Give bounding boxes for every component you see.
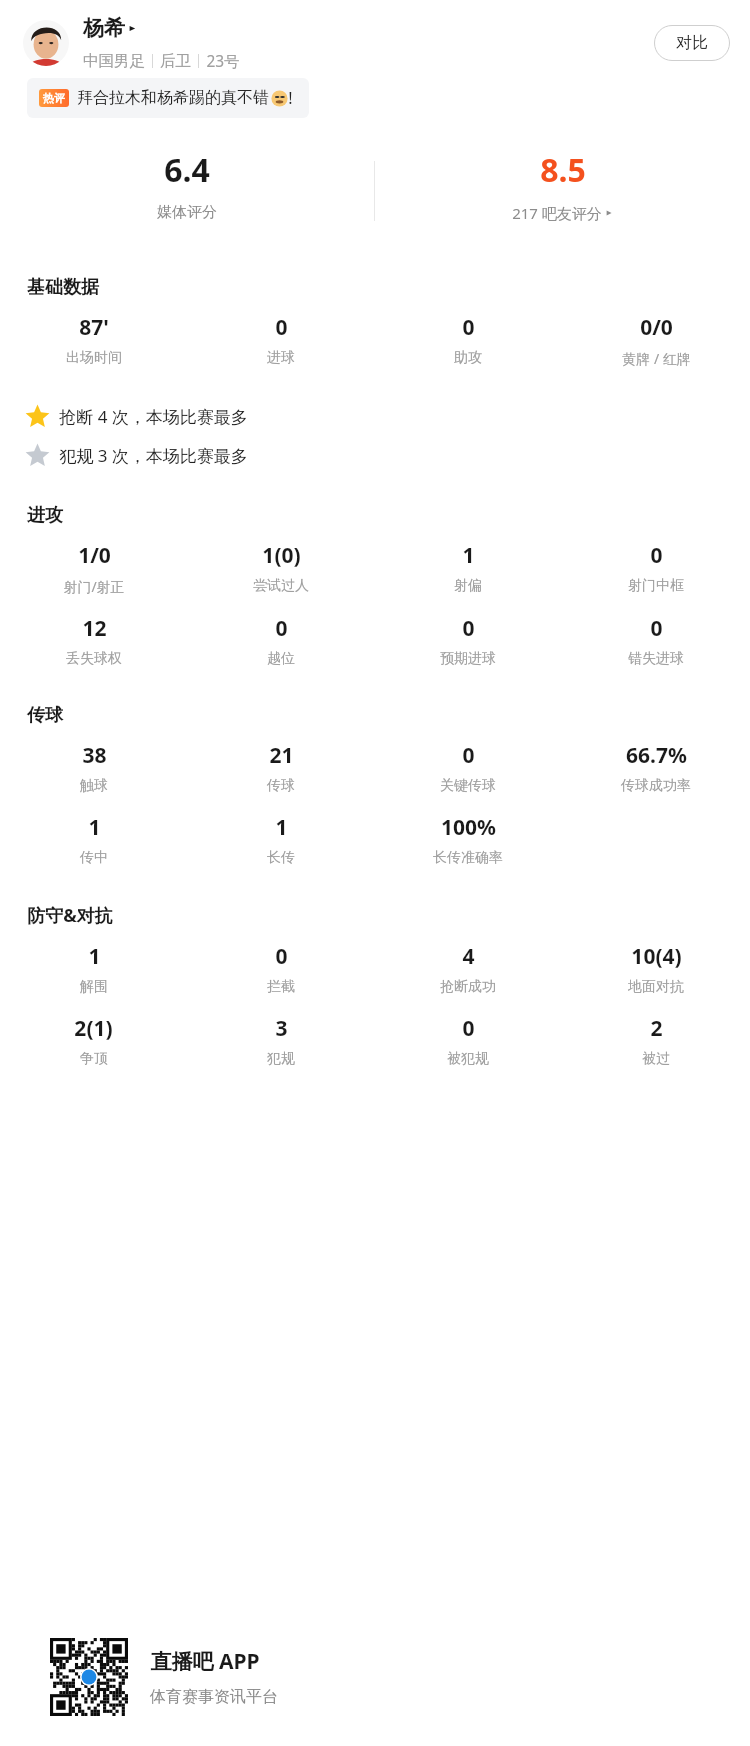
staticText: 助攻 <box>454 349 482 367</box>
staticText: 传球成功率 <box>621 777 691 795</box>
staticText: 射偏 <box>454 577 482 595</box>
button[interactable]: 0 <box>440 741 496 795</box>
staticText: 2 <box>650 1014 663 1043</box>
staticText: 传中 <box>80 849 108 867</box>
button[interactable]: 杨希 <box>83 15 137 41</box>
staticText: 23号 <box>206 50 240 71</box>
staticText: 拦截 <box>267 978 295 996</box>
staticText: 0 <box>275 942 288 971</box>
button[interactable]: 对比 <box>654 25 730 61</box>
button[interactable]: 2(1) <box>74 1014 113 1068</box>
button[interactable]: 0 <box>628 541 684 595</box>
button[interactable]: 38 <box>80 741 108 795</box>
staticText: 1 <box>88 942 101 971</box>
staticText: 38 <box>82 741 107 770</box>
staticText: 预期进球 <box>440 650 496 668</box>
staticText: 0 <box>462 614 475 643</box>
button[interactable]: 0 <box>628 614 684 668</box>
button[interactable]: 1/0 <box>63 541 125 596</box>
staticText: 错失进球 <box>628 650 684 668</box>
staticText: 后卫 <box>160 51 191 71</box>
staticText: 0/0 <box>640 313 673 342</box>
staticText: 长传 <box>267 849 295 867</box>
staticText: 2(1) <box>74 1014 113 1043</box>
button[interactable]: 1(0) <box>253 541 309 595</box>
staticText: 87' <box>79 313 109 342</box>
button[interactable]: 2 <box>642 1014 670 1068</box>
button[interactable]: 0 <box>440 614 496 668</box>
staticText: 媒体评分 <box>157 203 217 222</box>
button[interactable]: 0 <box>267 313 295 367</box>
staticText: 0 <box>462 1014 475 1043</box>
staticText: 100% <box>441 813 496 842</box>
staticText: 防守&对抗 <box>27 903 113 928</box>
staticText: 1 <box>462 541 475 570</box>
staticText: 10(4) <box>631 942 682 971</box>
staticText: 出场时间 <box>66 349 122 367</box>
button[interactable]: 10(4) <box>628 942 684 996</box>
staticText: 拜合拉木和杨希踢的真不错 <box>77 88 269 108</box>
staticText: 杨希 <box>83 15 125 41</box>
staticText: 犯规 <box>267 1050 295 1068</box>
button[interactable]: 1 <box>80 942 108 996</box>
staticText: 8.5 <box>540 148 586 192</box>
staticText: 中国男足 <box>83 51 145 71</box>
staticText: 射门中框 <box>628 577 684 595</box>
staticText: 1(0) <box>262 541 301 570</box>
staticText: 犯规 3 次，本场比赛最多 <box>59 444 248 467</box>
button[interactable]: Player avatar <box>23 20 69 66</box>
button[interactable]: 0 <box>267 614 295 668</box>
staticText: 长传准确率 <box>433 849 503 867</box>
button[interactable]: 0 <box>447 1014 489 1068</box>
staticText: 1 <box>88 813 101 842</box>
button[interactable]: 抢断 4 次，本场比赛最多 <box>0 404 750 429</box>
staticText: 争顶 <box>80 1050 108 1068</box>
staticText: 被犯规 <box>447 1050 489 1068</box>
staticText: 0 <box>462 313 475 342</box>
button[interactable]: 100% <box>433 813 503 867</box>
button[interactable]: 0 <box>454 313 482 367</box>
button[interactable]: 1 <box>267 813 295 867</box>
button[interactable]: 6.4 <box>157 148 217 222</box>
button[interactable]: 21 <box>267 741 295 795</box>
button[interactable]: 0 <box>267 942 295 996</box>
button[interactable]: 犯规 3 次，本场比赛最多 <box>0 443 750 468</box>
staticText: 对比 <box>676 33 708 53</box>
staticText: 进攻 <box>27 504 63 527</box>
staticText: 抢断成功 <box>440 978 496 996</box>
button[interactable]: 1 <box>80 813 108 867</box>
button[interactable]: 1 <box>454 541 482 595</box>
button[interactable]: 8.5 <box>512 148 613 223</box>
staticText: 0 <box>650 614 663 643</box>
staticText: 进球 <box>267 349 295 367</box>
button[interactable]: 66.7% <box>621 741 691 795</box>
staticText: 地面对抗 <box>628 978 684 996</box>
staticText: 12 <box>82 614 107 643</box>
staticText: 关键传球 <box>440 777 496 795</box>
button[interactable]: 0/0 <box>622 313 691 368</box>
staticText: 丢失球权 <box>66 650 122 668</box>
staticText: 6.4 <box>164 148 210 192</box>
staticText: 基础数据 <box>27 276 99 299</box>
staticText: 传球 <box>27 704 63 727</box>
staticText: ! <box>288 87 293 109</box>
staticText: 黄牌 / 红牌 <box>622 349 691 368</box>
staticText: 越位 <box>267 650 295 668</box>
staticText: 尝试过人 <box>253 577 309 595</box>
button[interactable]: 12 <box>66 614 122 668</box>
staticText: 被过 <box>642 1050 670 1068</box>
staticText: 传球 <box>267 777 295 795</box>
button[interactable]: 87' <box>66 313 122 367</box>
staticText: 0 <box>462 741 475 770</box>
staticText: 抢断 4 次，本场比赛最多 <box>59 405 248 428</box>
staticText: 解围 <box>80 978 108 996</box>
button[interactable]: 3 <box>267 1014 295 1068</box>
staticText: 0 <box>650 541 663 570</box>
staticText: 1 <box>275 813 288 842</box>
staticText: 217 吧友评分 <box>512 203 602 223</box>
button[interactable]: 4 <box>440 942 496 996</box>
staticText: 66.7% <box>626 741 687 770</box>
button[interactable]: 热评 <box>27 78 309 118</box>
staticText: 0 <box>275 313 288 342</box>
staticText: 0 <box>275 614 288 643</box>
